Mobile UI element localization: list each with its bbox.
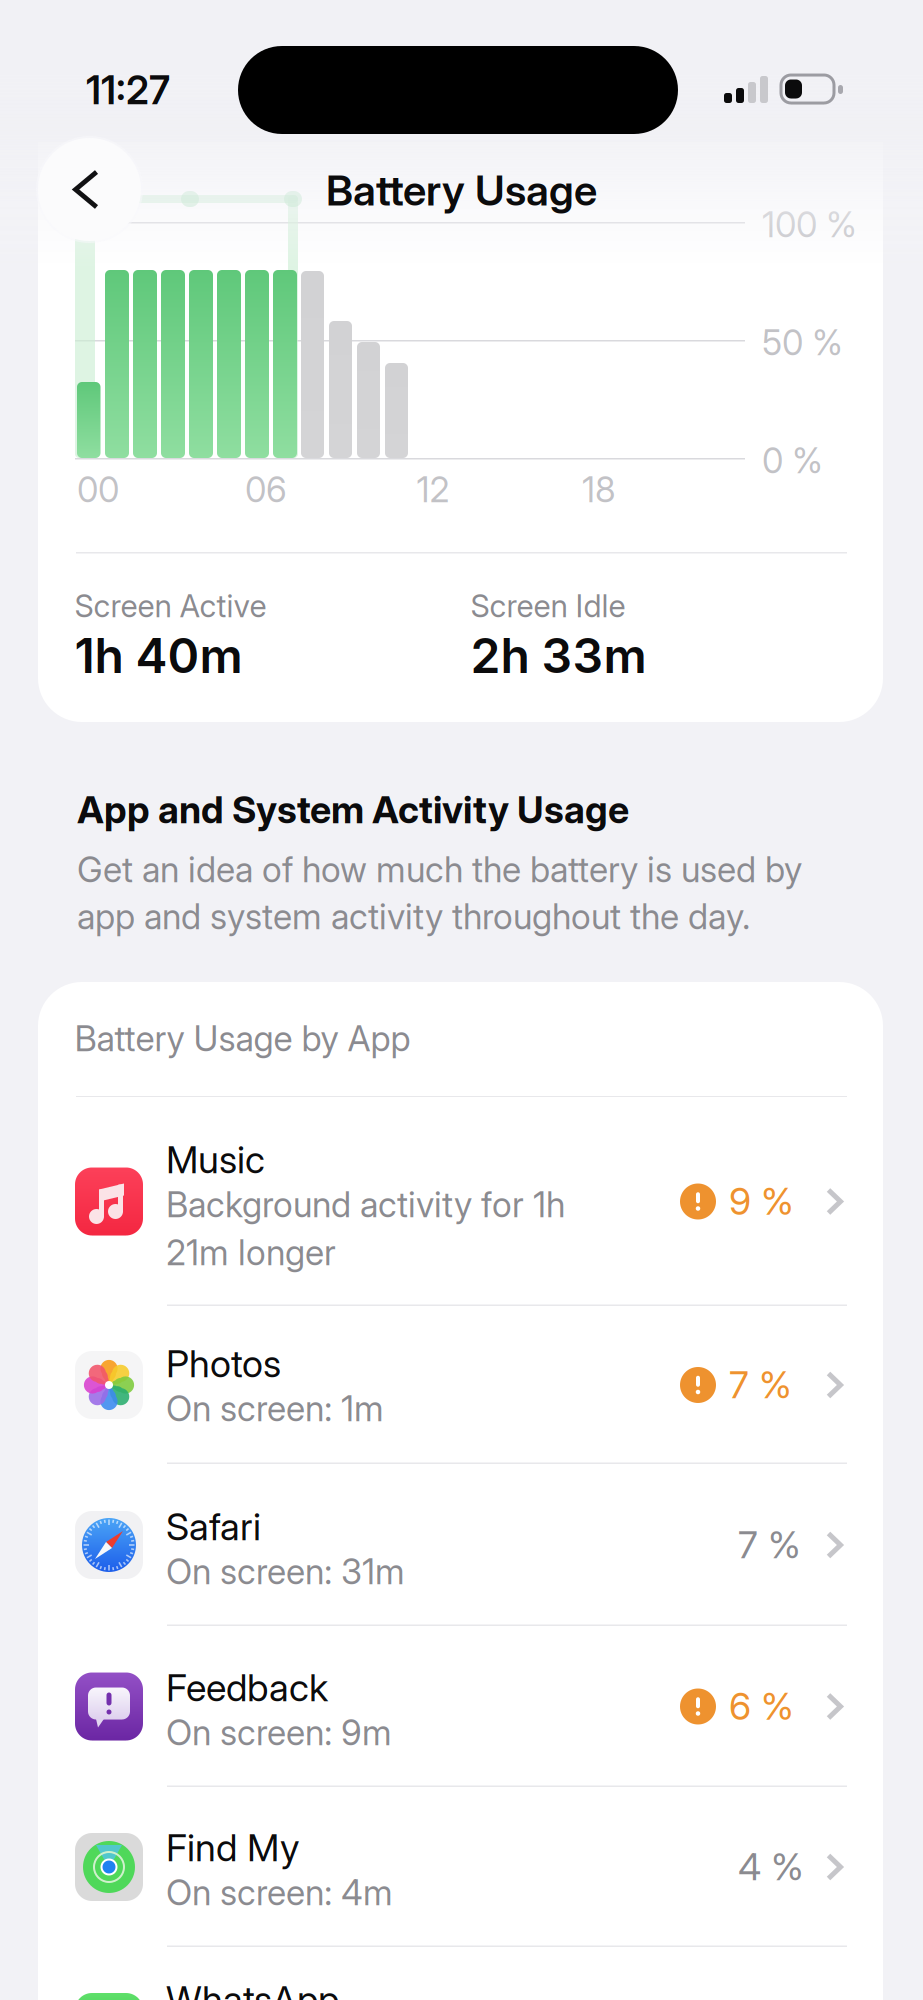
staticText: 1h 40m: [74, 626, 242, 685]
staticText: Safari: [166, 1504, 261, 1549]
staticText: Feedback: [166, 1665, 328, 1710]
staticText: 100 %: [762, 204, 857, 246]
button[interactable]: Back: [36, 136, 143, 243]
staticText: 0 %: [762, 440, 823, 482]
staticText: Battery Usage: [326, 165, 597, 216]
staticText: Photos: [166, 1341, 281, 1386]
staticText: WhatsApp: [166, 1977, 339, 2000]
button[interactable]: Photos: [38, 1306, 883, 1464]
button[interactable]: WhatsApp: [38, 1947, 883, 2000]
button[interactable]: Music: [38, 1097, 883, 1306]
staticText: 21m longer: [166, 1232, 336, 1274]
staticText: Screen Idle: [470, 588, 625, 625]
staticText: 18: [582, 469, 616, 511]
staticText: 2h 33m: [470, 626, 646, 685]
staticText: Background activity for 1h: [166, 1184, 565, 1226]
staticText: 6 %: [729, 1683, 794, 1729]
staticText: 11:27: [86, 67, 170, 113]
staticText: 9 %: [729, 1178, 794, 1224]
staticText: 7 %: [738, 1522, 801, 1567]
staticText: On screen: 1m: [166, 1388, 384, 1430]
staticText: On screen: 4m: [166, 1872, 393, 1914]
staticText: app and system activity throughout the d…: [77, 896, 750, 938]
staticText: Find My: [166, 1825, 300, 1870]
staticText: 4 %: [738, 1844, 804, 1889]
button[interactable]: Feedback: [38, 1626, 883, 1787]
staticText: 50 %: [762, 322, 843, 364]
staticText: Music: [166, 1137, 265, 1182]
staticText: 12: [416, 469, 449, 511]
staticText: App and System Activity Usage: [77, 787, 629, 832]
staticText: 7 %: [729, 1362, 792, 1407]
staticText: 00: [77, 469, 119, 511]
staticText: Battery Usage by App: [74, 1018, 410, 1060]
button[interactable]: Safari: [38, 1464, 883, 1626]
button[interactable]: Find My: [38, 1787, 883, 1947]
staticText: On screen: 9m: [166, 1712, 392, 1754]
staticText: 06: [245, 469, 287, 511]
staticText: On screen: 31m: [166, 1551, 405, 1593]
staticText: Get an idea of how much the battery is u…: [77, 849, 802, 891]
staticText: Screen Active: [74, 588, 266, 625]
